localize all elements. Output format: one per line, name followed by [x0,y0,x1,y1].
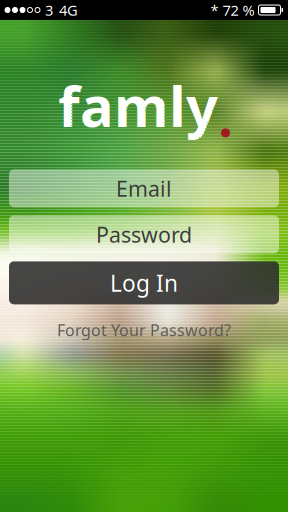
button[interactable]: Forgot Your Password? [49,316,239,344]
staticText: 4G [59,0,78,20]
staticText: Log In [110,268,178,298]
staticText: Email [116,174,172,202]
button[interactable]: Log In [9,261,279,304]
staticText: Password [96,220,192,248]
staticText: Forgot Your Password? [57,319,231,341]
staticText: famly [58,68,218,142]
staticText: 3 [45,0,53,20]
staticText: * [210,0,218,20]
staticText: 72 % [222,0,254,20]
